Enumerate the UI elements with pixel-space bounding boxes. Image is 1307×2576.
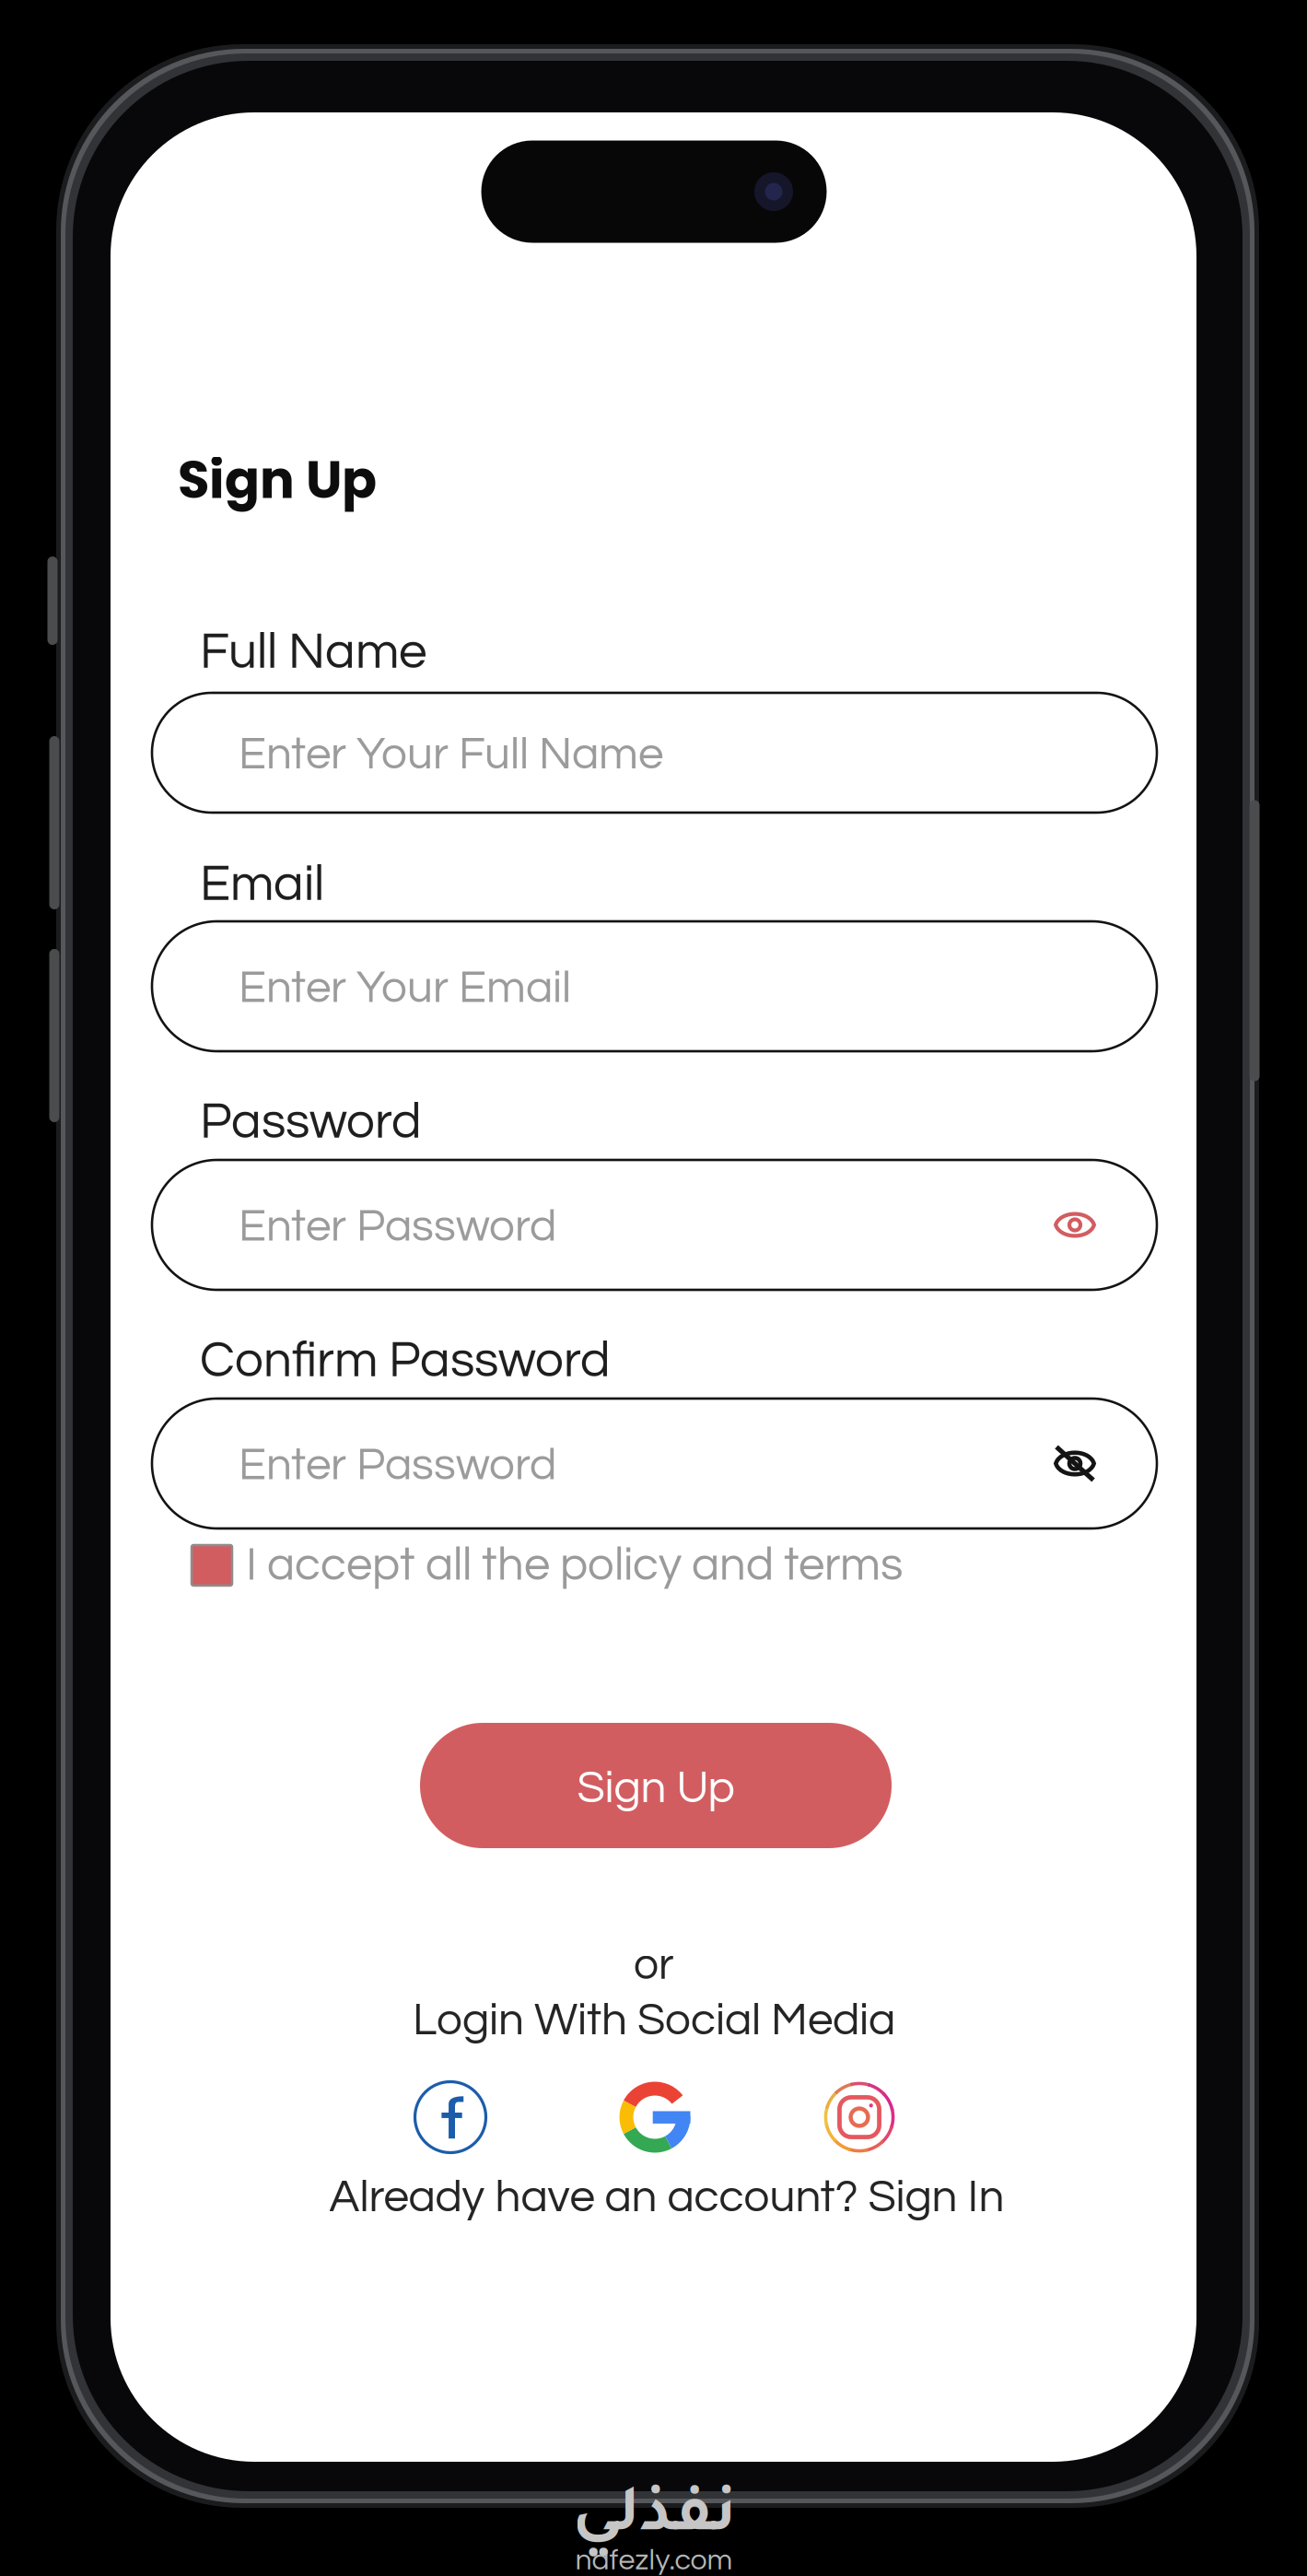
staticText: Enter Password — [239, 1203, 556, 1250]
button[interactable]: Sign up with Google — [603, 2066, 706, 2169]
button[interactable]: Show password — [1033, 1183, 1117, 1267]
button[interactable]: Sign Up — [420, 1723, 892, 1848]
button[interactable]: I accept all the policy and terms — [192, 1541, 903, 1589]
staticText: Enter Password — [239, 1442, 556, 1489]
staticText: I accept all the policy and terms — [246, 1541, 903, 1589]
staticText: Sign Up — [577, 1765, 735, 1812]
staticText: نفذلي — [572, 2487, 736, 2553]
staticText: Enter Your Full Name — [239, 731, 663, 778]
staticText: Confirm Password — [200, 1335, 611, 1387]
staticText: Full Name — [200, 626, 426, 678]
staticText: Email — [200, 858, 324, 910]
staticText: Already have an account? Sign In — [329, 2174, 1004, 2221]
staticText: or — [634, 1942, 674, 1988]
button[interactable]: Hide password — [1033, 1421, 1117, 1506]
staticText: Sign Up — [178, 444, 377, 516]
staticText: Enter Your Email — [239, 965, 571, 1012]
staticText: Password — [200, 1096, 422, 1148]
staticText: Login With Social Media — [413, 1997, 895, 2044]
button[interactable]: Sign up with Instagram — [808, 2066, 911, 2169]
button[interactable]: Already have an account? Sign In — [329, 2174, 1004, 2221]
staticText: nafezly.com — [575, 2545, 733, 2576]
button[interactable]: Sign up with Facebook — [399, 2066, 502, 2169]
